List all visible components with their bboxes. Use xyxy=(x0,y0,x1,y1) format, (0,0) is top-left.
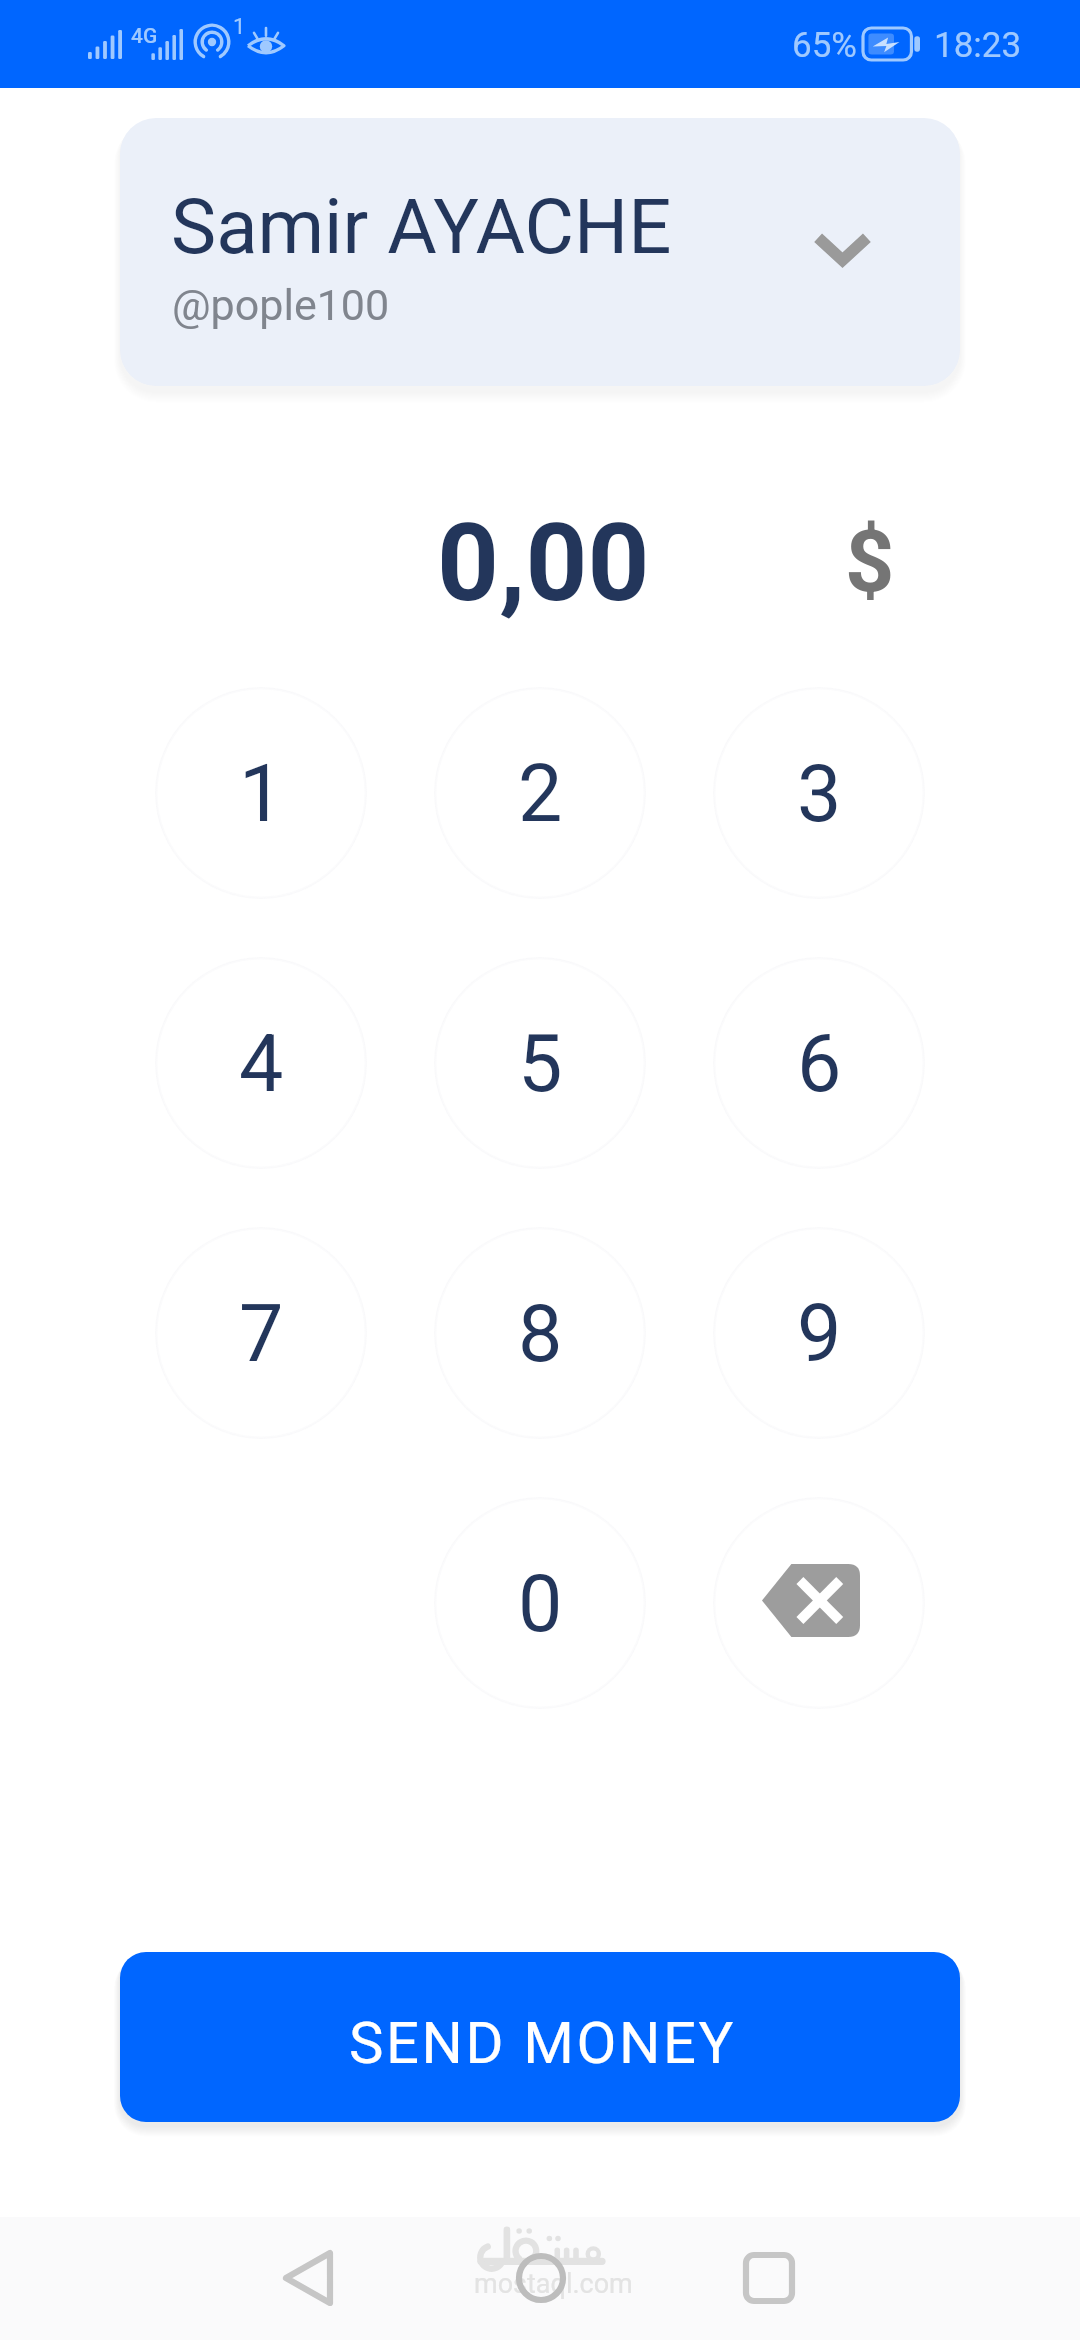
staticText: Samir AYACHE xyxy=(171,182,672,271)
staticText: 18:23 xyxy=(934,25,1022,66)
button[interactable]: 0 xyxy=(434,1497,646,1709)
button[interactable]: 4 xyxy=(155,957,367,1169)
button[interactable]: Backspace xyxy=(713,1497,925,1709)
staticText: $ xyxy=(845,511,895,612)
button[interactable]: 5 xyxy=(434,957,646,1169)
staticText: 9 xyxy=(797,1288,842,1381)
staticText: 6 xyxy=(797,1018,842,1111)
button[interactable]: Recents xyxy=(732,2241,806,2315)
button[interactable]: Samir AYACHE xyxy=(120,118,960,386)
staticText: 4 xyxy=(239,1018,284,1111)
button[interactable]: Home xyxy=(504,2241,578,2315)
staticText: SEND MONEY xyxy=(349,2009,736,2077)
button[interactable]: 6 xyxy=(713,957,925,1169)
button[interactable]: 2 xyxy=(434,687,646,899)
button[interactable]: 8 xyxy=(434,1227,646,1439)
button[interactable]: Back xyxy=(271,2241,345,2315)
button[interactable]: 7 xyxy=(155,1227,367,1439)
staticText: 3 xyxy=(797,748,842,841)
button[interactable]: 3 xyxy=(713,687,925,899)
staticText: 0 xyxy=(518,1558,563,1651)
staticText: @pople100 xyxy=(172,280,390,330)
staticText: 0,00 xyxy=(437,500,650,627)
staticText: 7 xyxy=(239,1288,284,1381)
button[interactable]: SEND MONEY xyxy=(120,1952,960,2122)
staticText: 1 xyxy=(233,14,246,40)
staticText: 1 xyxy=(239,748,284,841)
staticText: mostaql.com xyxy=(474,2268,633,2300)
staticText: 65% xyxy=(792,25,857,66)
staticText: 4G xyxy=(131,24,158,49)
staticText: 2 xyxy=(518,748,563,841)
button[interactable]: 9 xyxy=(713,1227,925,1439)
button[interactable]: 1 xyxy=(155,687,367,899)
staticText: 5 xyxy=(518,1018,563,1111)
staticText: 8 xyxy=(518,1288,563,1381)
